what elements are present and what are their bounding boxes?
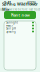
staticText: Water (6, 24, 13, 27)
staticText: 100% (27, 0, 36, 5)
button[interactable]: Plant now (0, 11, 40, 19)
staticText: sow 2 weeks before last frost (0, 8, 40, 11)
staticText: Spacing (6, 30, 16, 33)
staticText: Soil pH (6, 27, 16, 30)
staticText: 9:41 (4, 0, 11, 5)
staticText: Spring Wildflower Mix (2, 1, 38, 12)
staticText: Sunlight (6, 21, 18, 24)
staticText: Plant now (10, 12, 29, 18)
